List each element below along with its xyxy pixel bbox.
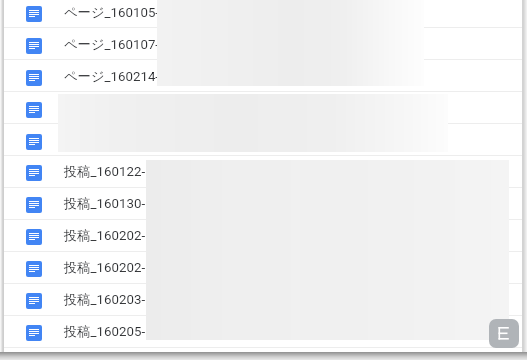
- staticText: 投稿_160202-: [64, 227, 146, 244]
- staticText: ページ_160214-: [64, 68, 160, 85]
- staticText: 投稿_160205-: [64, 323, 146, 340]
- button[interactable]: [4, 124, 522, 156]
- staticText: 投稿_160122-: [64, 163, 146, 180]
- button[interactable]: Account: [489, 319, 519, 348]
- button[interactable]: [4, 316, 522, 348]
- button[interactable]: [4, 220, 522, 252]
- button[interactable]: [4, 252, 522, 284]
- button[interactable]: [4, 156, 522, 188]
- button[interactable]: [4, 92, 522, 124]
- button[interactable]: [4, 284, 522, 316]
- staticText: 投稿_160202-: [64, 259, 146, 276]
- staticText: ページ_160107-: [64, 36, 160, 53]
- staticText: 投稿_160203-: [64, 291, 146, 308]
- button[interactable]: [4, 60, 522, 92]
- button[interactable]: [4, 188, 522, 220]
- button[interactable]: [4, 28, 522, 60]
- staticText: ページ_160105-: [64, 4, 160, 21]
- button[interactable]: [4, 0, 522, 28]
- staticText: 投稿_160130-: [64, 195, 146, 212]
